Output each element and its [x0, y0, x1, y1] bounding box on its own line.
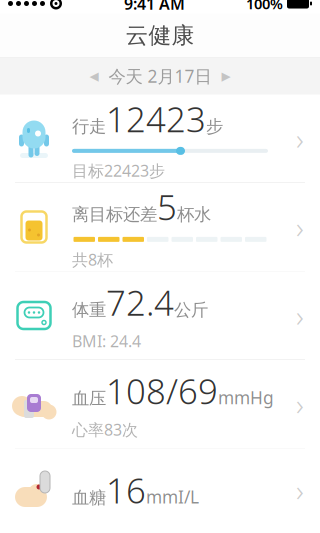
button[interactable]: 离目标还差	[0, 183, 320, 271]
staticText: 16	[106, 467, 146, 513]
button[interactable]: ◀	[0, 58, 320, 94]
staticText: ›	[296, 296, 304, 335]
staticText: ›	[296, 119, 304, 158]
button[interactable]: 血压	[0, 360, 320, 448]
staticText: 体重	[72, 299, 106, 321]
staticText: 血糖	[72, 487, 106, 508]
staticText: 共8杯	[72, 249, 113, 270]
staticText: ›	[296, 207, 304, 246]
staticText: 杯水	[177, 204, 211, 225]
staticText: BMI: 24.4	[72, 330, 141, 352]
staticText: 离目标还差	[72, 204, 157, 225]
staticText: 5	[157, 184, 177, 230]
staticText: 108/69	[106, 368, 218, 414]
staticText: 12423	[106, 96, 206, 142]
staticText: ›	[296, 384, 304, 423]
button[interactable]: 血糖	[0, 448, 320, 531]
staticText: ▶	[221, 69, 230, 83]
staticText: mmI/L	[146, 485, 199, 508]
staticText: 公斤	[174, 299, 208, 321]
staticText: ›	[296, 470, 304, 509]
staticText: 步	[206, 116, 223, 137]
staticText: ◀	[89, 69, 98, 83]
button[interactable]: 体重	[0, 271, 320, 359]
staticText: 今天 2月17日	[108, 64, 211, 87]
staticText: 云健康	[125, 22, 194, 49]
staticText: 血压	[72, 388, 106, 409]
staticText: 目标22423步	[72, 160, 165, 181]
staticText: 行走	[72, 116, 106, 137]
staticText: 9:41 AM	[124, 0, 185, 14]
button[interactable]: 行走	[0, 94, 320, 182]
staticText: 72.4	[106, 279, 174, 325]
staticText: 100%	[246, 0, 283, 13]
staticText: 心率83次	[72, 419, 138, 440]
staticText: mmHg	[218, 386, 274, 409]
